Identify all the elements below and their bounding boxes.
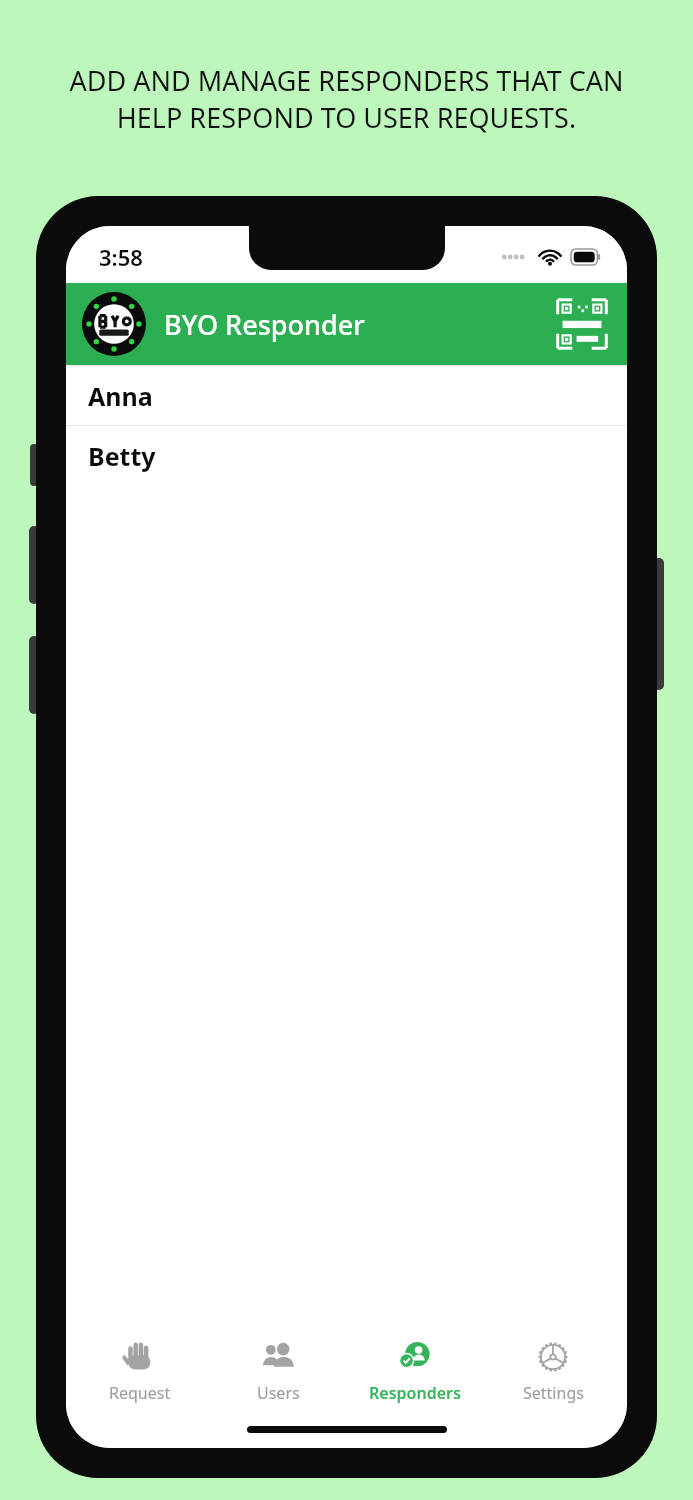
staticText: Users	[257, 1382, 300, 1404]
button[interactable]: BYO Responder logo	[82, 292, 146, 356]
staticText: Request	[109, 1382, 171, 1404]
button[interactable]: Responders	[351, 1333, 479, 1410]
button[interactable]: Anna	[66, 365, 627, 425]
button[interactable]: Request	[76, 1333, 204, 1410]
staticText: 3:58	[99, 242, 143, 272]
button[interactable]: Settings	[489, 1333, 617, 1410]
button[interactable]: Scan BYO QR code	[555, 297, 609, 351]
button[interactable]: Betty	[66, 425, 627, 485]
staticText: Settings	[523, 1382, 584, 1404]
staticText: Anna	[88, 379, 153, 413]
staticText: Betty	[88, 439, 156, 473]
button[interactable]: Users	[214, 1333, 342, 1410]
staticText: Responders	[369, 1382, 461, 1404]
staticText: ADD AND MANAGE RESPONDERS THAT CAN HELP …	[69, 62, 624, 136]
staticText: BYO Responder	[164, 306, 365, 343]
